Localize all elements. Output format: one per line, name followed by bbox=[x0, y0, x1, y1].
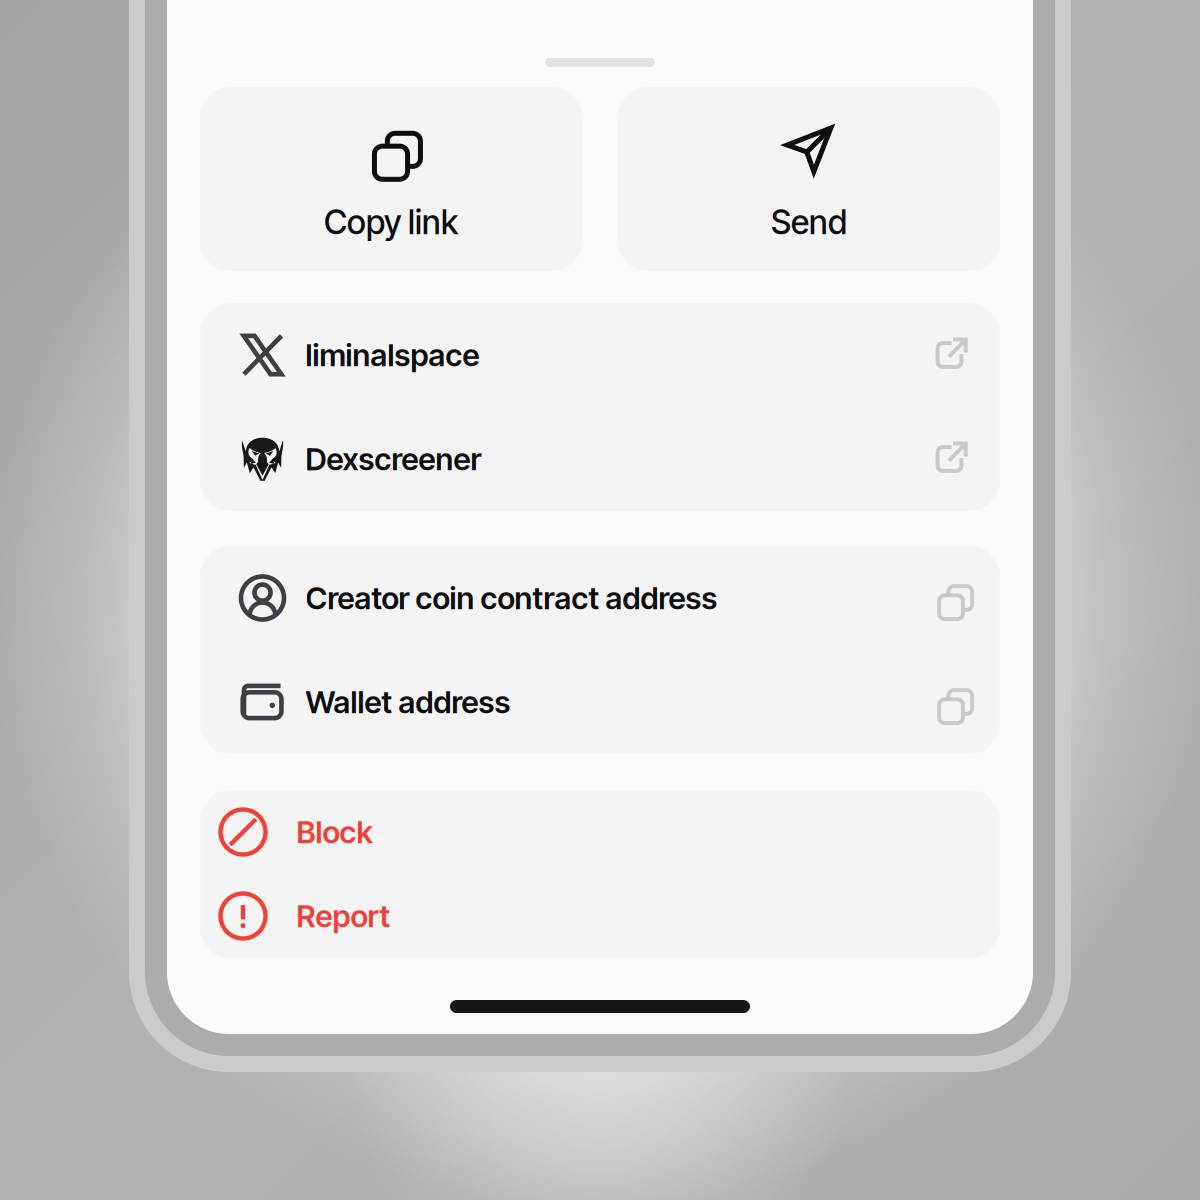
button[interactable]: Block bbox=[200, 790, 999, 874]
staticText: Copy link bbox=[324, 202, 458, 242]
button[interactable]: liminalspace bbox=[200, 303, 999, 407]
staticText: Send bbox=[771, 202, 847, 242]
staticText: Creator coin contract address bbox=[305, 579, 717, 616]
staticText: liminalspace bbox=[305, 336, 479, 373]
staticText: Wallet address bbox=[305, 683, 510, 720]
button[interactable]: Dexscreener bbox=[200, 407, 999, 511]
button[interactable]: Creator coin contract address bbox=[200, 546, 999, 650]
staticText: Block bbox=[296, 813, 372, 850]
button[interactable]: Report bbox=[200, 874, 999, 958]
staticText: Dexscreener bbox=[305, 440, 481, 477]
button[interactable]: Send bbox=[618, 87, 1000, 271]
button[interactable]: Wallet address bbox=[200, 650, 999, 754]
button[interactable]: Copy link bbox=[200, 87, 582, 271]
staticText: Report bbox=[296, 897, 390, 934]
